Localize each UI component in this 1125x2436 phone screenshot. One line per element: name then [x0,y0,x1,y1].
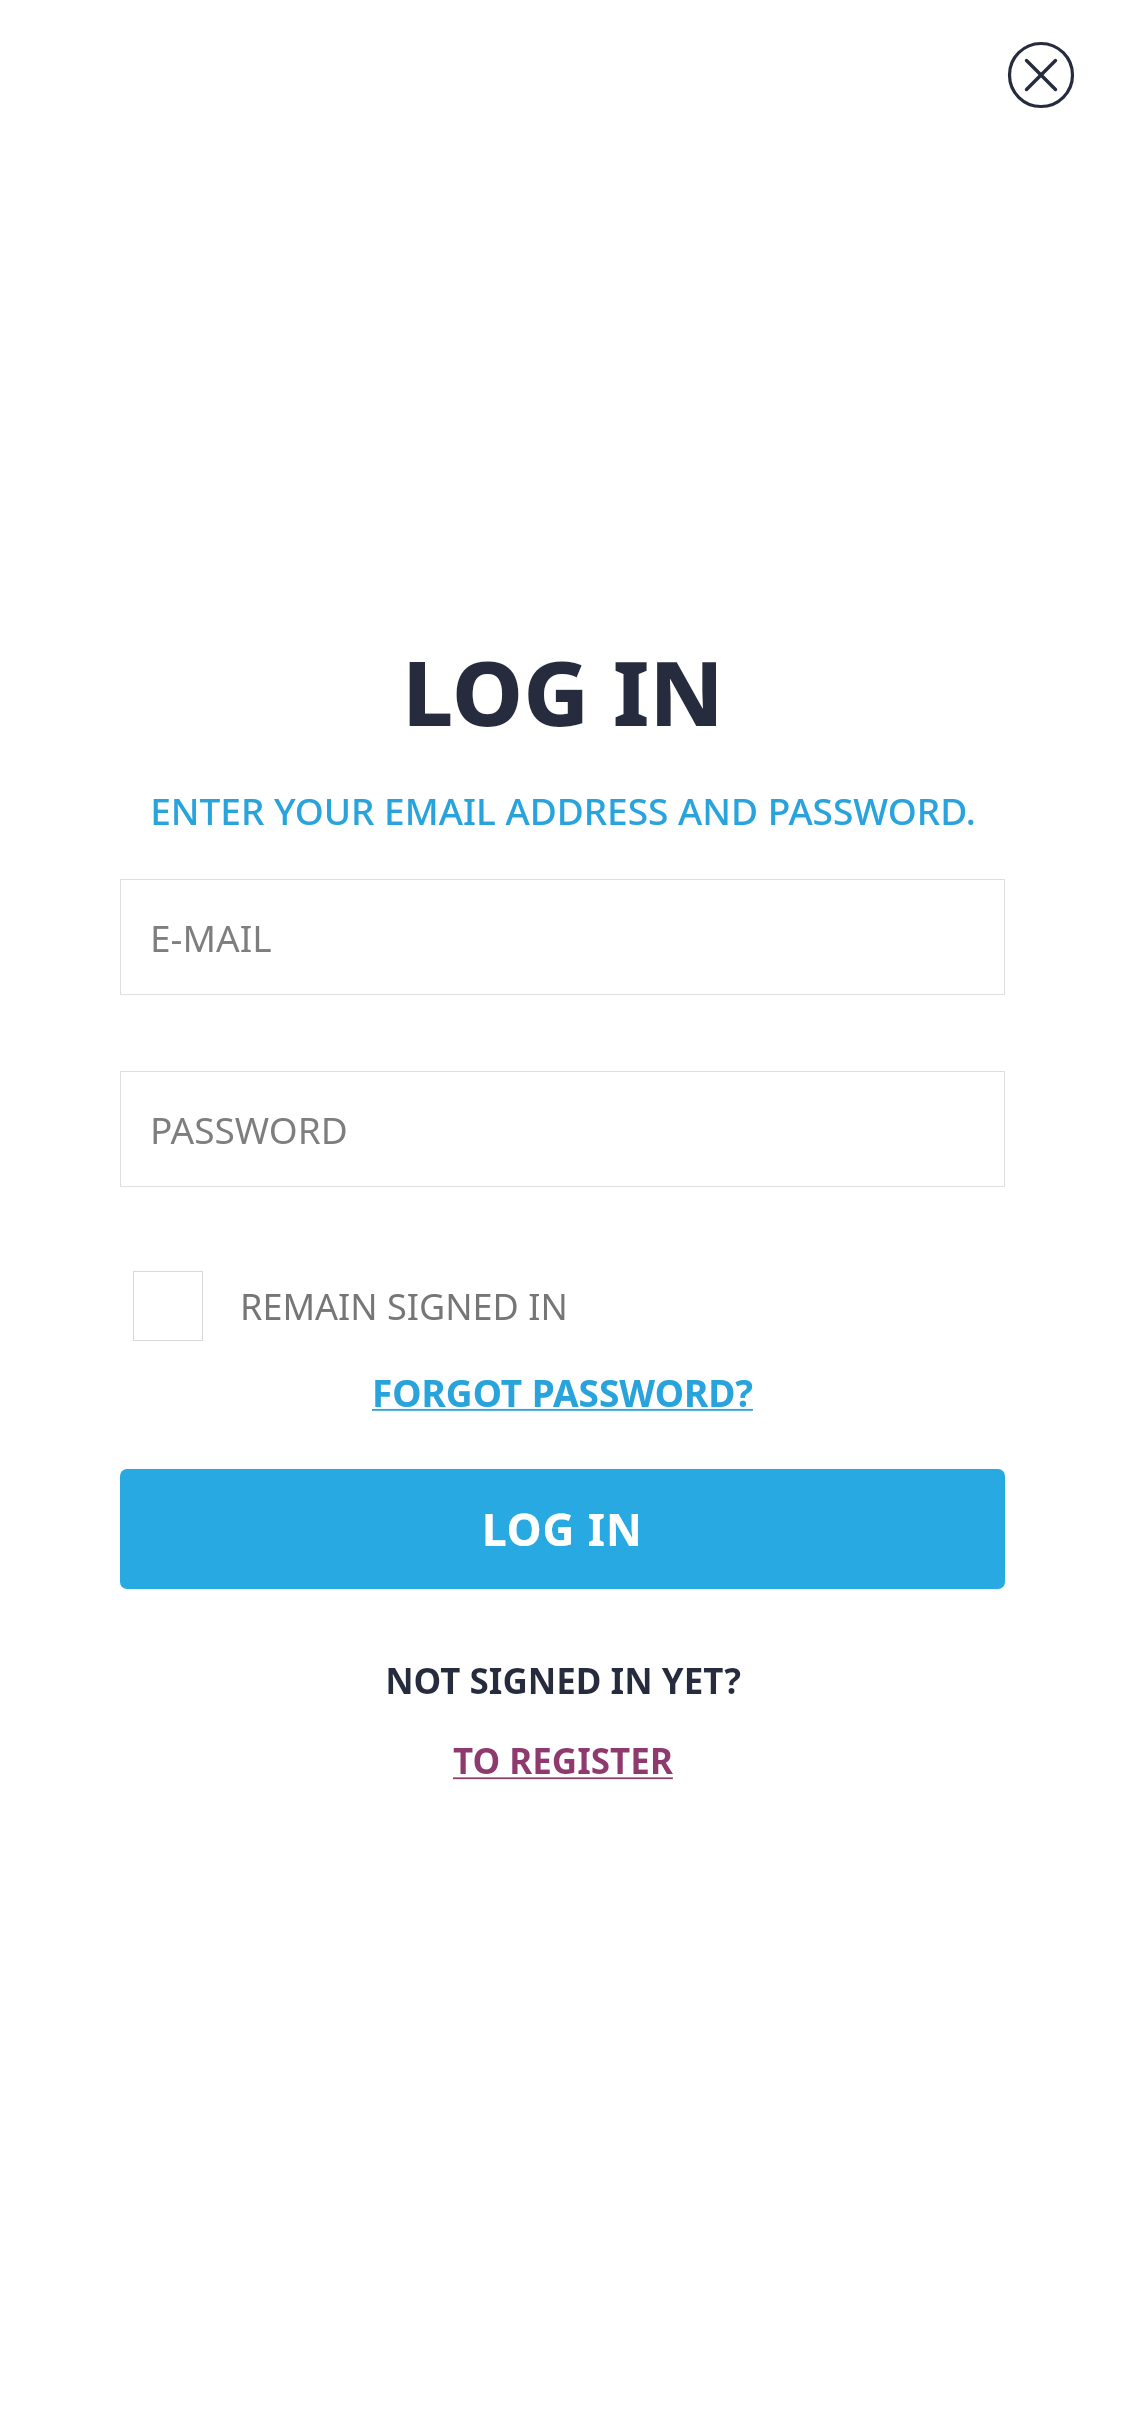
button[interactable]: PASSWORD [120,1071,1005,1187]
staticText: LOG IN [482,1499,643,1559]
button[interactable]: E-MAIL [120,879,1005,995]
button[interactable]: REMAIN SIGNED IN [133,1271,568,1341]
button[interactable]: TO REGISTER [445,1733,681,1789]
button[interactable]: LOG IN [120,1469,1005,1589]
staticText: NOT SIGNED IN YET? [385,1657,741,1705]
staticText: FORGOT PASSWORD? [372,1367,753,1417]
button[interactable]: FORGOT PASSWORD? [364,1363,761,1421]
staticText: ENTER YOUR EMAIL ADDRESS AND PASSWORD. [150,785,976,835]
staticText: PASSWORD [150,1104,348,1154]
staticText: LOG IN [402,630,724,753]
staticText: E-MAIL [150,912,272,962]
button[interactable]: Close [997,31,1085,119]
staticText: TO REGISTER [453,1737,673,1785]
staticText: REMAIN SIGNED IN [240,1282,568,1331]
